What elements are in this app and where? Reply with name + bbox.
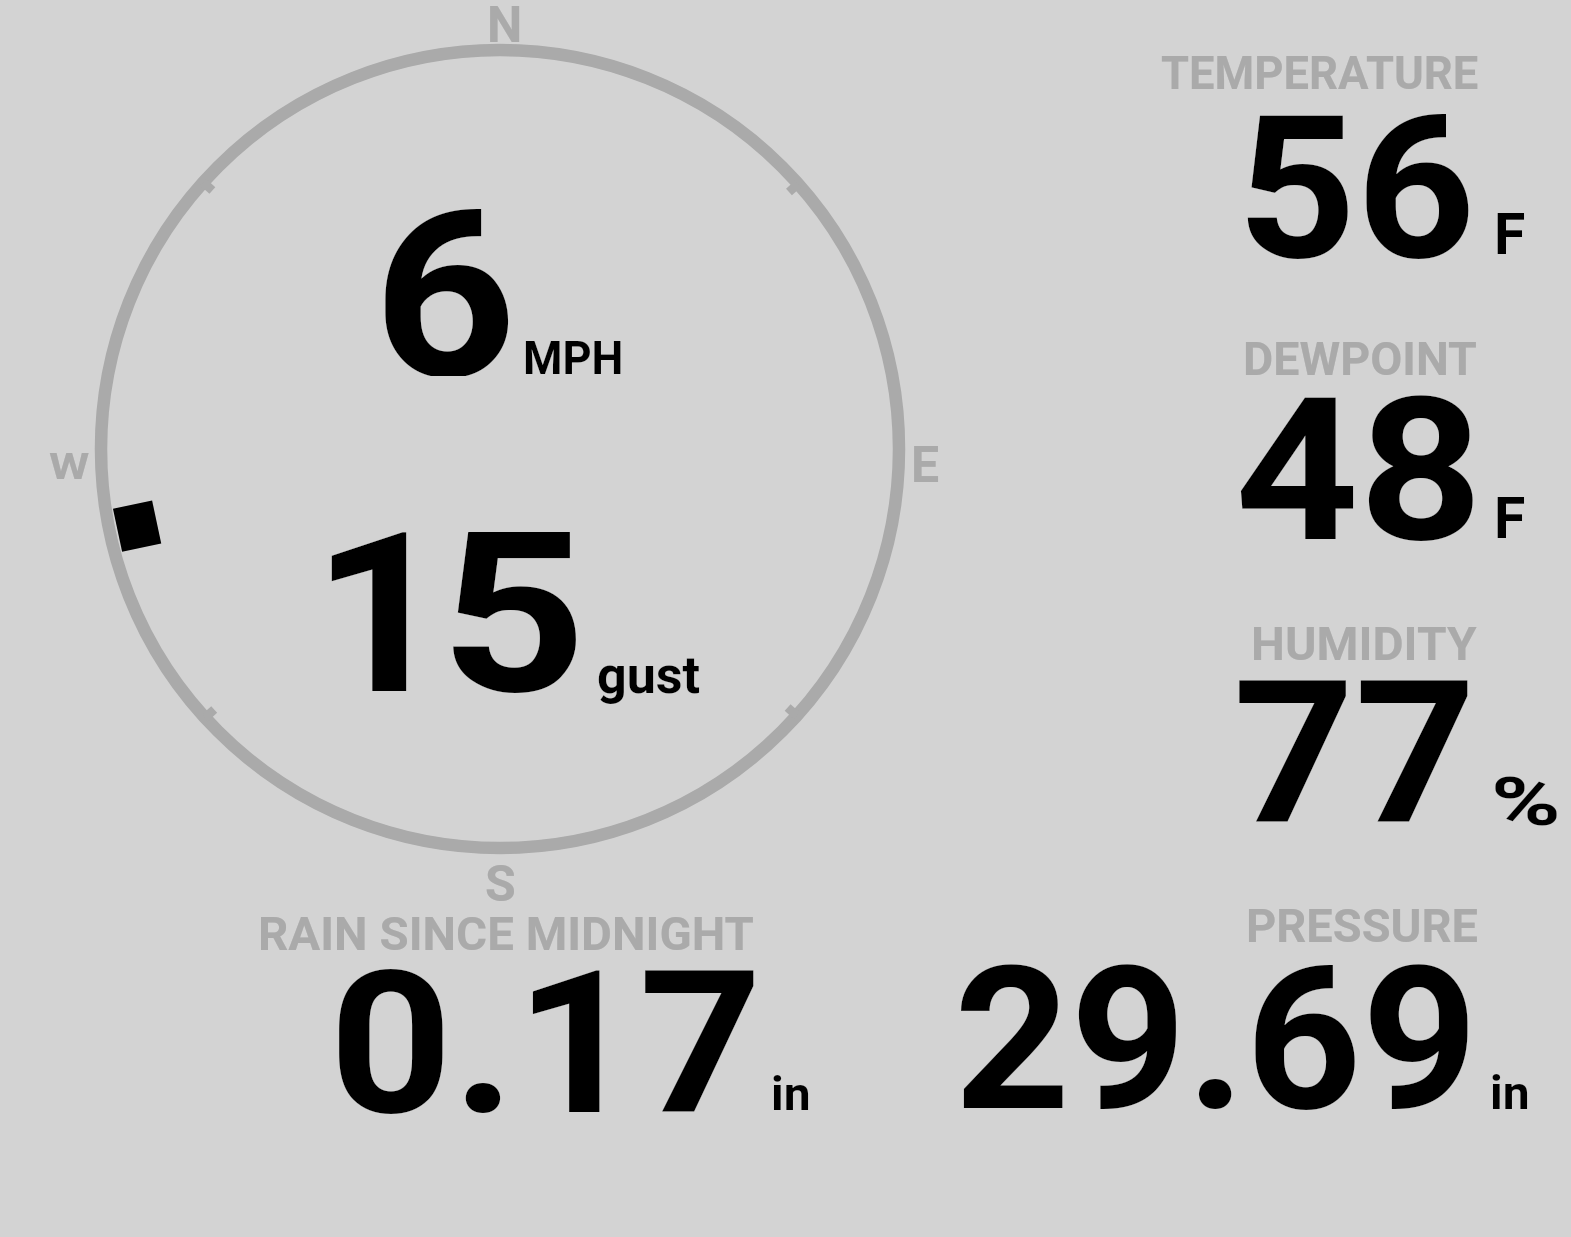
button[interactable]: DEWPOINT <box>1120 315 1571 575</box>
staticText: F <box>1494 485 1526 552</box>
staticText: 5 <box>440 485 587 700</box>
button[interactable]: RAIN SINCE MIDNIGHT <box>230 880 850 1140</box>
staticText: gust <box>597 645 701 706</box>
staticText: E <box>911 436 940 495</box>
staticText: TEMPERATURE <box>1161 45 1478 100</box>
staticText: 48 <box>1235 354 1483 587</box>
staticText: in <box>771 1066 811 1121</box>
staticText: 1 <box>312 485 451 700</box>
staticText: 29.69 <box>954 923 1478 1156</box>
staticText: 6 <box>373 161 518 376</box>
button[interactable]: 1 <box>320 500 710 715</box>
staticText: 56 <box>1237 72 1476 305</box>
staticText: S <box>485 855 516 914</box>
button[interactable]: 6 <box>360 170 640 385</box>
staticText: % <box>1491 764 1562 842</box>
staticText: W <box>49 446 90 488</box>
button[interactable]: TEMPERATURE <box>1120 30 1571 290</box>
staticText: PRESSURE <box>1246 898 1478 953</box>
staticText: RAIN SINCE MIDNIGHT <box>258 906 755 961</box>
staticText: MPH <box>523 331 624 385</box>
button[interactable]: HUMIDITY <box>1120 600 1571 860</box>
staticText: DEWPOINT <box>1243 331 1478 386</box>
staticText: 0.17 <box>329 927 763 1160</box>
button[interactable]: PRESSURE <box>900 880 1571 1140</box>
staticText: 77 <box>1233 637 1477 870</box>
staticText: HUMIDITY <box>1251 616 1477 671</box>
staticText: N <box>487 0 523 55</box>
staticText: in <box>1490 1065 1530 1120</box>
button[interactable]: Wind direction compass <box>85 34 915 864</box>
staticText: F <box>1494 201 1526 268</box>
